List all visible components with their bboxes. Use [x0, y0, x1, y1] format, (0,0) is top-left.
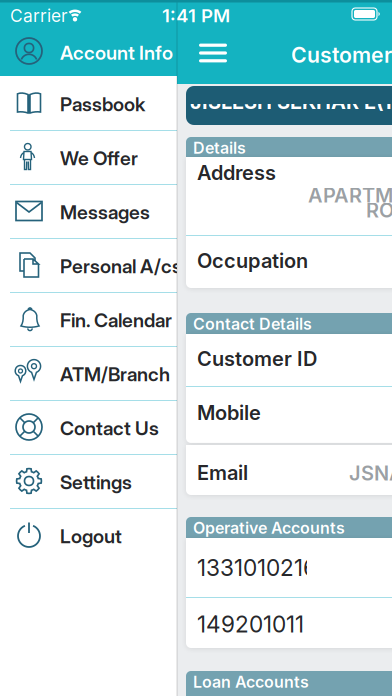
staticText: ATM/Branch — [60, 362, 170, 386]
staticText: Carrier — [10, 5, 68, 26]
staticText: Address — [197, 161, 276, 185]
staticText: Customer Information — [291, 42, 392, 68]
button[interactable]: Fin. Calendar — [0, 292, 177, 346]
button[interactable]: Menu — [193, 37, 233, 69]
staticText: Settings — [60, 470, 132, 494]
staticText: JISLESH SEKHAR E(10203040506 — [190, 90, 392, 113]
button[interactable]: JISLESH SEKHAR E(10203040506 — [186, 86, 392, 125]
button[interactable]: Personal A/cs — [0, 238, 177, 292]
staticText: Fin. Calendar — [60, 308, 172, 332]
staticText: Passbook — [60, 92, 145, 116]
staticText: 1331010216 — [197, 554, 317, 581]
staticText: ROAD NO 12 — [366, 198, 392, 222]
staticText: Logout — [60, 524, 122, 548]
button[interactable]: Account Info — [0, 28, 177, 76]
staticText: Loan Accounts — [193, 672, 309, 691]
staticText: Personal A/cs — [60, 254, 182, 278]
button[interactable]: We Offer — [0, 130, 177, 184]
button[interactable]: Contact Us — [0, 400, 177, 454]
staticText: Contact Details — [193, 314, 312, 333]
button[interactable]: Logout — [0, 508, 177, 562]
button[interactable]: Passbook — [0, 76, 177, 130]
staticText: 149201011 — [197, 611, 304, 638]
staticText: Occupation — [197, 249, 308, 273]
staticText: APARTMENT BUILDING 8 — [308, 183, 392, 207]
staticText: We Offer — [60, 146, 138, 170]
staticText: Email — [197, 461, 248, 485]
staticText: 1:41 PM — [162, 4, 230, 26]
staticText: Messages — [60, 200, 150, 224]
staticText: Mobile — [197, 401, 261, 425]
staticText: Details — [193, 138, 246, 157]
button[interactable]: Messages — [0, 184, 177, 238]
button[interactable]: 1331010216 — [186, 538, 392, 597]
button[interactable]: 149201011 — [186, 598, 392, 648]
staticText: Contact Us — [60, 416, 159, 440]
staticText: Operative Accounts — [193, 518, 345, 537]
button[interactable]: ATM/Branch — [0, 346, 177, 400]
button[interactable]: Settings — [0, 454, 177, 508]
staticText: Account Info — [60, 41, 173, 64]
staticText: Customer ID — [197, 347, 317, 371]
staticText: JSNAIR123@GMAIL.COM — [349, 461, 392, 485]
